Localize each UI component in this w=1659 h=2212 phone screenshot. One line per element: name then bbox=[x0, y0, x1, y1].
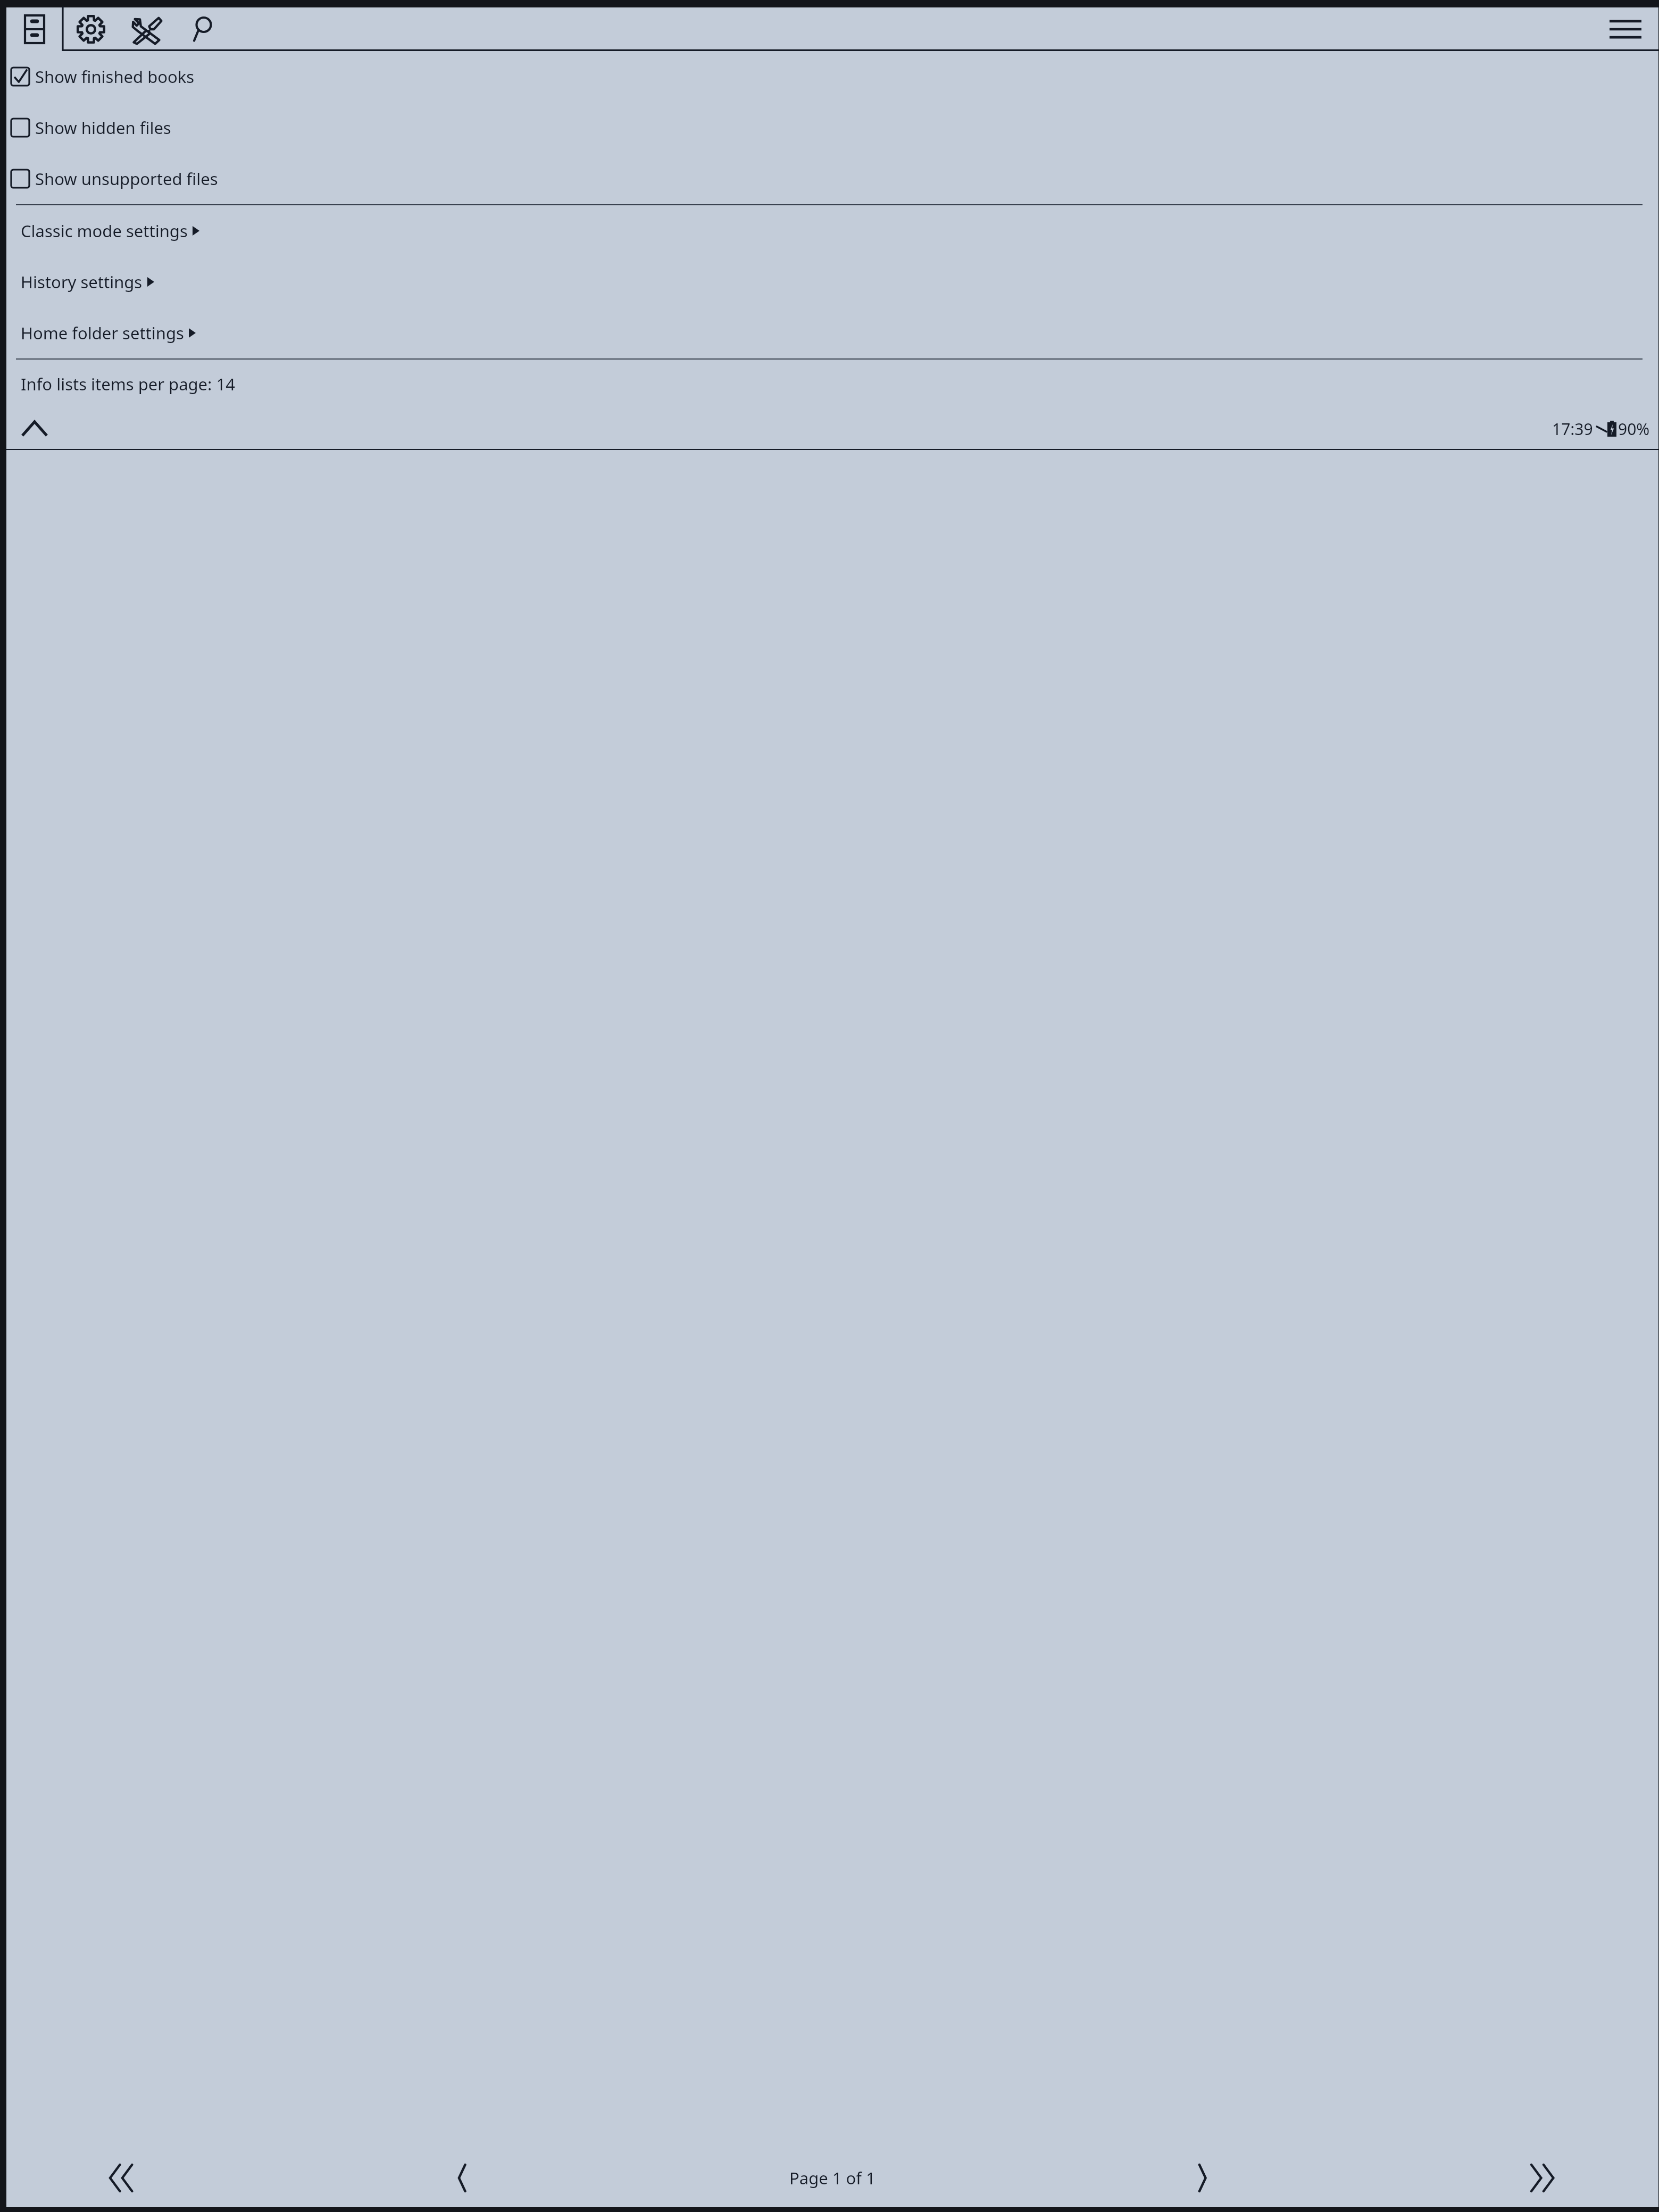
staticText: Info lists items per page: 14 bbox=[21, 373, 235, 395]
button[interactable]: History settings bbox=[6, 256, 1658, 307]
button[interactable]: Last page bbox=[1523, 2158, 1563, 2198]
button[interactable]: Home folder settings bbox=[6, 307, 1658, 358]
button[interactable]: Tools bbox=[119, 7, 174, 51]
button[interactable]: Settings bbox=[63, 7, 119, 51]
button[interactable]: Show hidden files bbox=[6, 102, 1658, 153]
staticText: Show finished books bbox=[35, 65, 195, 88]
staticText: Page 1 of 1 bbox=[789, 2167, 876, 2189]
button[interactable]: Previous page bbox=[443, 2158, 482, 2198]
button[interactable]: Collapse bbox=[19, 418, 50, 439]
staticText: Show unsupported files bbox=[35, 168, 218, 190]
button[interactable]: Main menu bbox=[1592, 7, 1658, 51]
button[interactable]: Page 1 of 1 bbox=[783, 2164, 882, 2192]
button[interactable]: File browser bbox=[6, 7, 63, 51]
button[interactable]: Search bbox=[174, 7, 232, 51]
button[interactable]: Show unsupported files bbox=[6, 153, 1658, 204]
staticText: 90% bbox=[1618, 418, 1650, 440]
staticText: Classic mode settings bbox=[21, 220, 188, 242]
staticText: History settings bbox=[21, 271, 143, 293]
button[interactable]: Next page bbox=[1183, 2158, 1222, 2198]
button[interactable]: Show finished books bbox=[6, 51, 1658, 102]
staticText: 17:39 bbox=[1552, 418, 1593, 440]
button[interactable]: First page bbox=[102, 2158, 141, 2198]
button[interactable]: Classic mode settings bbox=[6, 205, 1658, 256]
staticText: Home folder settings bbox=[21, 322, 184, 344]
button[interactable]: Info lists items per page: 14 bbox=[6, 360, 1658, 408]
staticText: Show hidden files bbox=[35, 116, 171, 139]
